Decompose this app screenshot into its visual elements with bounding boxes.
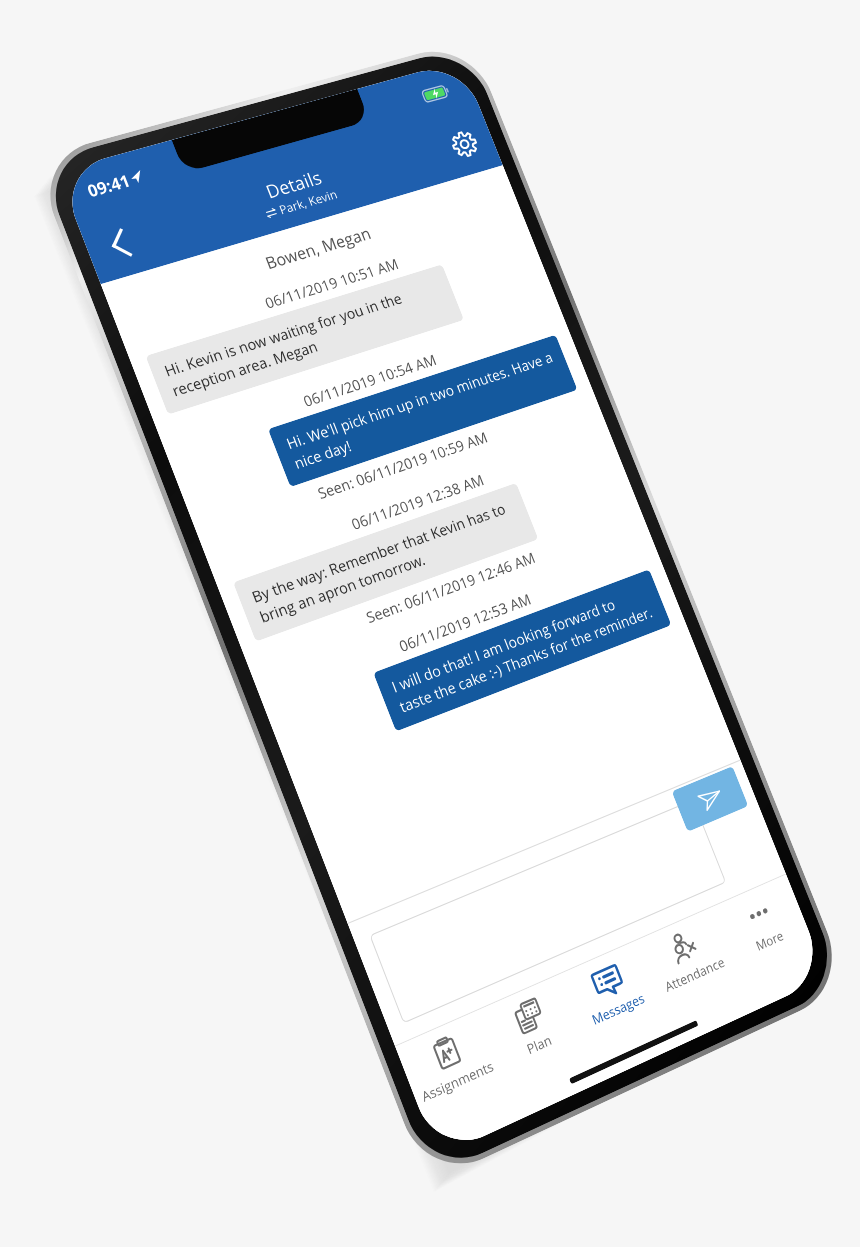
button[interactable]: Assignments	[399, 1020, 511, 1132]
staticText: Attendance	[662, 952, 728, 996]
button[interactable]: Back	[77, 205, 161, 284]
button[interactable]: By the way: Remember that Kevin has to b…	[233, 483, 538, 642]
staticText: Bowen, Megan	[122, 183, 503, 316]
button[interactable]: More	[716, 884, 818, 987]
button[interactable]	[369, 799, 726, 1023]
button[interactable]: Send message	[672, 766, 748, 832]
staticText: Seen: 06/11/2019 10:59 AM	[209, 394, 586, 539]
button[interactable]: Settings	[426, 107, 503, 181]
staticText: More	[753, 926, 786, 955]
staticText: 06/11/2019 10:54 AM	[175, 312, 554, 452]
button[interactable]: Hi. We'll pick him up in two minutes. Ha…	[268, 335, 578, 487]
staticText: 06/11/2019 12:38 AM	[224, 430, 601, 577]
button[interactable]: Hi. Kevin is now waiting for you in the …	[145, 264, 464, 415]
staticText: 06/11/2019 10:51 AM	[136, 219, 516, 351]
staticText: 06/11/2019 12:53 AM	[272, 547, 647, 702]
staticText: Seen: 06/11/2019 12:46 AM	[258, 512, 634, 666]
staticText: Hi. Kevin is now waiting for you in the …	[161, 277, 449, 401]
staticText: Assignments	[419, 1056, 497, 1106]
button[interactable]: I will do that! I am looking forward to …	[373, 569, 671, 732]
staticText: 09:41	[84, 169, 134, 202]
staticText: Hi. We'll pick him up in two minutes. Ha…	[283, 347, 563, 474]
button[interactable]: Plan	[482, 984, 591, 1094]
staticText: I will do that! I am looking forward to …	[389, 582, 657, 718]
staticText: Park, Kevin	[277, 186, 340, 218]
staticText: By the way: Remember that Kevin has to b…	[249, 496, 524, 628]
button[interactable]: Attendance	[641, 916, 744, 1021]
staticText: Plan	[524, 1030, 555, 1058]
staticText: Details	[262, 165, 326, 204]
staticText: Messages	[589, 988, 648, 1029]
button[interactable]: Messages	[563, 950, 669, 1057]
